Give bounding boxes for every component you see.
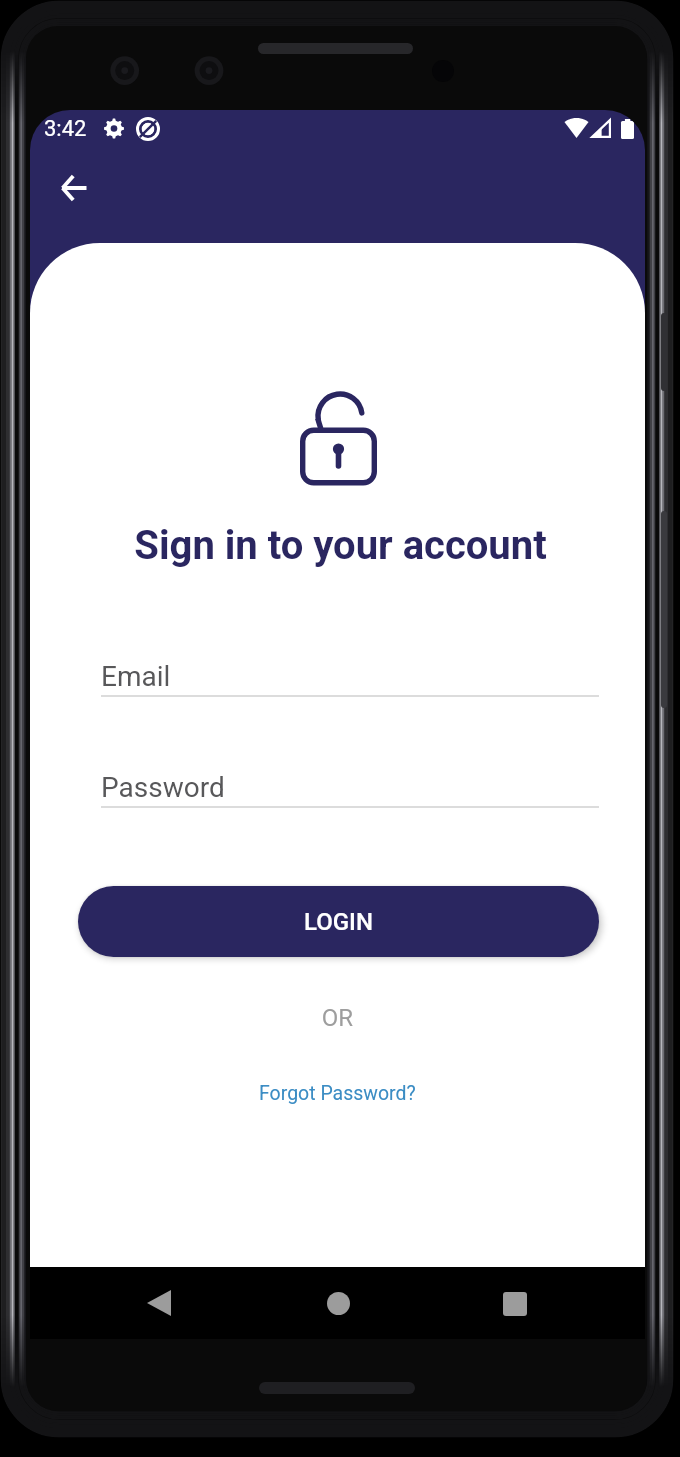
staticText: Sign in to your account <box>33 522 645 569</box>
button[interactable]: Back <box>137 1281 181 1325</box>
button[interactable]: Navigate up <box>46 160 102 216</box>
button[interactable]: Recent apps <box>493 1282 537 1326</box>
staticText: Password <box>101 771 225 804</box>
button[interactable]: LOGIN <box>78 886 599 957</box>
staticText: OR <box>30 1004 645 1032</box>
staticText: Email <box>101 660 171 693</box>
button[interactable]: Home <box>316 1281 360 1325</box>
button[interactable]: Forgot Password? <box>253 1079 422 1108</box>
staticText: 3:42 <box>44 116 87 142</box>
staticText: LOGIN <box>304 908 373 936</box>
button[interactable]: Email <box>101 650 599 697</box>
button[interactable]: Password <box>101 761 599 808</box>
